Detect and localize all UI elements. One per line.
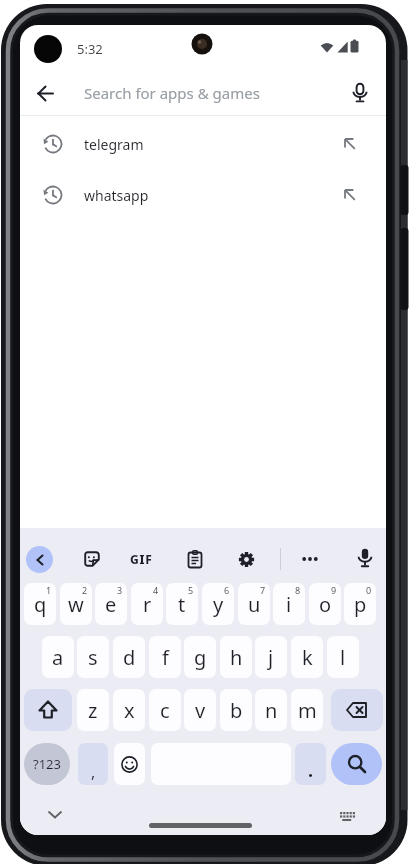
button[interactable]: p — [344, 583, 376, 625]
staticText: 1 — [46, 584, 52, 596]
button[interactable]: GIF — [127, 545, 155, 573]
staticText: o — [319, 591, 332, 618]
button[interactable] — [78, 545, 106, 573]
button[interactable] — [24, 689, 72, 731]
staticText: ?123 — [33, 755, 61, 773]
button[interactable]: a — [42, 636, 74, 678]
button[interactable]: k — [291, 636, 323, 678]
staticText: c — [160, 697, 170, 724]
button[interactable]: e — [95, 583, 127, 625]
staticText: 9 — [331, 584, 337, 596]
button[interactable]: whatsapp — [20, 172, 386, 218]
staticText: whatsapp — [84, 186, 149, 205]
staticText: w — [68, 591, 84, 618]
button[interactable]: g — [184, 636, 216, 678]
staticText: . — [308, 758, 314, 783]
staticText: i — [286, 591, 292, 618]
staticText: j — [268, 644, 274, 671]
staticText: telegram — [84, 135, 144, 154]
staticText: 0 — [366, 584, 372, 596]
button[interactable] — [232, 545, 260, 573]
staticText: g — [194, 644, 207, 671]
button[interactable]: z — [77, 689, 109, 731]
staticText: q — [34, 591, 47, 618]
staticText: r — [143, 591, 152, 618]
button[interactable] — [331, 743, 382, 785]
staticText: 3 — [117, 584, 123, 596]
staticText: 6 — [224, 584, 230, 596]
button[interactable]: i — [273, 583, 305, 625]
button[interactable]: telegram — [20, 121, 386, 167]
button[interactable] — [26, 546, 53, 573]
button[interactable]: ?123 — [24, 743, 70, 785]
button[interactable]: o — [309, 583, 341, 625]
staticText: z — [88, 697, 98, 724]
button[interactable] — [34, 799, 76, 831]
button[interactable]: c — [149, 689, 181, 731]
button[interactable] — [181, 545, 209, 573]
button[interactable]: u — [238, 583, 270, 625]
staticText: 7 — [260, 584, 266, 596]
staticText: t — [178, 591, 186, 618]
staticText: a — [52, 644, 64, 671]
staticText: s — [88, 644, 98, 671]
button[interactable]: j — [255, 636, 287, 678]
staticText: k — [302, 644, 313, 671]
button[interactable]: b — [220, 689, 252, 731]
staticText: f — [162, 644, 169, 671]
button[interactable]: t — [166, 583, 198, 625]
staticText: 4 — [153, 584, 159, 596]
staticText: x — [124, 697, 135, 724]
button[interactable]: d — [113, 636, 145, 678]
staticText: u — [248, 591, 261, 618]
button[interactable]: r — [131, 583, 163, 625]
staticText: 5:32 — [77, 40, 103, 58]
button[interactable] — [296, 545, 324, 573]
button[interactable] — [344, 77, 376, 109]
button[interactable]: y — [202, 583, 234, 625]
button[interactable]: m — [291, 689, 323, 731]
button[interactable]: Search for apps & games — [20, 71, 386, 115]
staticText: p — [354, 591, 367, 618]
staticText: n — [265, 697, 278, 724]
button[interactable]: , — [78, 743, 108, 785]
button[interactable] — [29, 77, 61, 109]
staticText: d — [123, 644, 136, 671]
button[interactable]: n — [255, 689, 287, 731]
button[interactable]: x — [113, 689, 145, 731]
staticText: l — [340, 644, 346, 671]
button[interactable]: h — [220, 636, 252, 678]
button[interactable] — [351, 544, 379, 572]
button[interactable]: . — [295, 743, 326, 785]
button[interactable]: s — [77, 636, 109, 678]
button[interactable] — [114, 743, 145, 785]
button[interactable]: w — [60, 583, 92, 625]
button[interactable]: l — [327, 636, 359, 678]
staticText: 5 — [188, 584, 194, 596]
staticText: h — [230, 644, 243, 671]
staticText: y — [213, 591, 224, 618]
button[interactable] — [331, 689, 383, 731]
staticText: b — [230, 697, 243, 724]
staticText: Search for apps & games — [84, 83, 260, 103]
staticText: 8 — [295, 584, 301, 596]
staticText: GIF — [130, 551, 153, 567]
button[interactable]: v — [184, 689, 216, 731]
staticText: m — [298, 697, 317, 724]
staticText: v — [195, 697, 206, 724]
button[interactable] — [325, 801, 369, 833]
staticText: 2 — [82, 584, 88, 596]
staticText: , — [91, 761, 96, 783]
button[interactable]: q — [24, 583, 56, 625]
staticText: e — [105, 591, 117, 618]
button[interactable]: f — [149, 636, 181, 678]
